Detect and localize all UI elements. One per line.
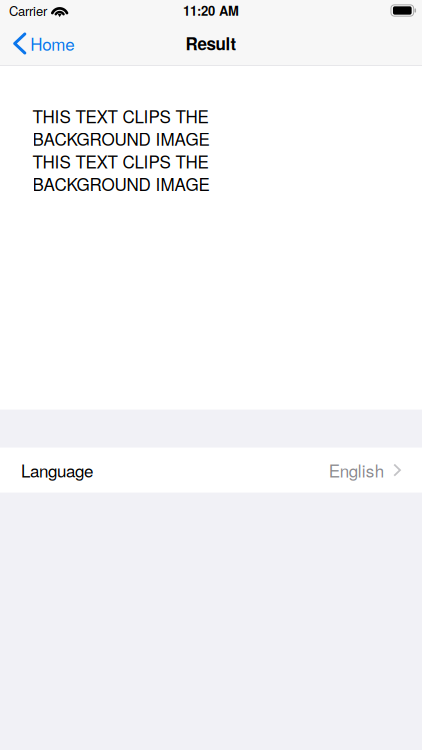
staticText: 11:20 AM <box>183 1 239 20</box>
staticText: THIS TEXT CLIPS THE <box>32 149 208 173</box>
staticText: BACKGROUND IMAGE <box>32 171 209 196</box>
staticText: English <box>329 458 384 482</box>
staticText: BACKGROUND IMAGE <box>32 126 209 151</box>
staticText: Carrier <box>9 1 47 20</box>
staticText: Home <box>30 31 74 56</box>
button[interactable]: Language <box>0 448 422 493</box>
staticText: Language <box>21 458 93 482</box>
staticText: THIS TEXT CLIPS THE <box>32 104 208 128</box>
staticText: Result <box>185 31 236 55</box>
button[interactable]: Home <box>0 27 84 65</box>
